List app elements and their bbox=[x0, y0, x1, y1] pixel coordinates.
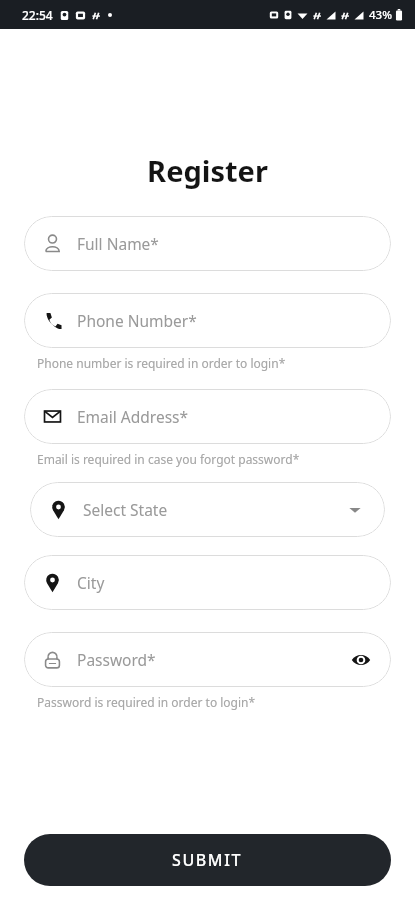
staticText: Select State bbox=[83, 499, 343, 520]
staticText: 43% bbox=[369, 7, 392, 23]
staticText: Full Name* bbox=[77, 233, 373, 254]
staticText: Register bbox=[0, 151, 415, 190]
staticText: 22:54 bbox=[22, 7, 53, 23]
button[interactable]: City bbox=[24, 555, 391, 610]
button[interactable]: Full Name* bbox=[24, 216, 391, 271]
staticText: Phone Number* bbox=[77, 310, 373, 331]
button[interactable]: Email Address* bbox=[24, 389, 391, 444]
button[interactable]: SUBMIT bbox=[24, 834, 391, 886]
staticText: Phone number is required in order to log… bbox=[37, 355, 415, 371]
staticText: City bbox=[77, 572, 373, 593]
staticText: SUBMIT bbox=[172, 849, 243, 871]
staticText: Email Address* bbox=[77, 406, 373, 427]
staticText: Email is required in case you forgot pas… bbox=[37, 451, 415, 467]
button[interactable]: Select State bbox=[30, 482, 385, 537]
button[interactable]: Password* bbox=[24, 632, 391, 687]
staticText: Password* bbox=[77, 649, 349, 670]
button[interactable]: Phone Number* bbox=[24, 293, 391, 348]
staticText: Password is required in order to login* bbox=[37, 694, 415, 710]
button[interactable]: Show password bbox=[349, 648, 373, 672]
